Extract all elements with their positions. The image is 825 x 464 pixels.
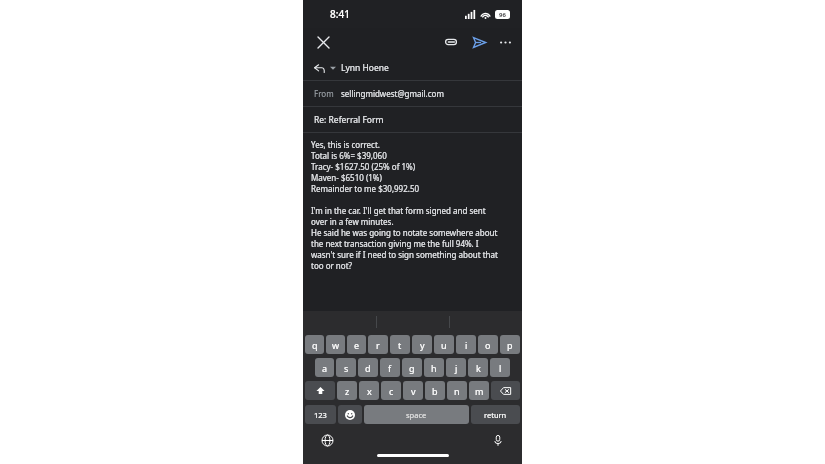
staticText: 8:41 [330,7,350,21]
button[interactable]: Lynn Hoene [303,56,522,80]
staticText: h [431,362,437,374]
staticText: v [411,385,416,397]
button[interactable]: g [402,358,422,377]
staticText: return [484,410,507,420]
staticText: space [406,410,427,420]
staticText: n [454,385,460,397]
button[interactable]: space [364,405,469,424]
staticText: j [455,362,458,374]
staticText: Re: Referral Form [314,114,384,126]
staticText: o [485,339,491,351]
staticText: u [441,339,447,351]
button[interactable]: return [471,405,520,424]
button[interactable]: v [403,381,423,400]
staticText: over in a few minutes. [311,216,394,227]
button[interactable]: l [490,358,510,377]
button[interactable]: o [478,335,498,354]
staticText: s [344,362,349,374]
button[interactable]: j [446,358,466,377]
button[interactable]: e [347,335,366,354]
button[interactable]: Attach [440,31,462,53]
button[interactable]: t [390,335,410,354]
staticText: i [465,339,468,351]
staticText: He said he was going to notate somewhere… [311,227,498,238]
staticText: w [332,339,340,351]
button[interactable]: Re: Referral Form [303,107,522,132]
button[interactable]: y [412,335,432,354]
staticText: Total is 6%= $39,060 [311,150,387,161]
button[interactable]: Emoji [338,405,362,424]
button[interactable]: q [305,335,324,354]
button[interactable]: More options [494,31,516,53]
button[interactable]: From [303,81,522,106]
staticText: y [420,339,425,351]
staticText: Tracy- $1627.50 (25% of 1%) [311,161,416,172]
staticText: e [354,339,360,351]
button[interactable]: b [425,381,445,400]
button[interactable]: Change keyboard language [317,430,337,450]
button[interactable]: Close [312,31,334,53]
staticText: too or not? [311,260,353,271]
staticText: 123 [314,410,327,420]
staticText: sellingmidwest@gmail.com [341,88,444,99]
staticText: Yes, this is correct. [311,139,380,150]
button[interactable]: Backspace [491,381,520,400]
button[interactable]: r [368,335,388,354]
button[interactable]: Send [468,31,490,53]
button[interactable]: p [500,335,520,354]
button[interactable]: h [424,358,444,377]
staticText: r [376,339,380,351]
staticText: f [388,362,392,374]
staticText: l [499,362,502,374]
staticText: Remainder to me $30,992.50 [311,183,420,194]
staticText: the next transaction giving me the full … [311,238,479,249]
staticText: 96 [499,11,506,19]
button[interactable]: z [337,381,357,400]
staticText: x [367,385,372,397]
staticText: From [314,88,334,99]
button[interactable]: k [468,358,488,377]
button[interactable]: c [381,381,401,400]
button[interactable]: n [447,381,467,400]
button[interactable]: a [315,358,334,377]
button[interactable]: x [359,381,379,400]
button[interactable]: 123 [305,405,336,424]
staticText: z [345,385,350,397]
staticText: wasn't sure if I need to sign something … [311,249,498,260]
staticText: Maven- $6510 (1%) [311,172,382,183]
button[interactable]: m [469,381,489,400]
staticText: m [475,385,484,397]
button[interactable]: Voice input [488,430,508,450]
staticText: t [398,339,402,351]
button[interactable]: w [326,335,345,354]
button[interactable]: i [456,335,476,354]
staticText: k [476,362,481,374]
staticText: I'm in the car. I'll get that form signe… [311,205,486,216]
button[interactable]: s [336,358,356,377]
button[interactable]: f [380,358,400,377]
staticText: p [507,339,513,351]
staticText: Lynn Hoene [341,62,389,74]
button[interactable]: u [434,335,454,354]
button[interactable]: d [358,358,378,377]
staticText: a [322,362,328,374]
staticText: c [389,385,394,397]
staticText: q [312,339,318,351]
button[interactable]: Shift [305,381,335,400]
staticText: b [432,385,438,397]
staticText: d [365,362,371,374]
staticText: g [409,362,415,374]
